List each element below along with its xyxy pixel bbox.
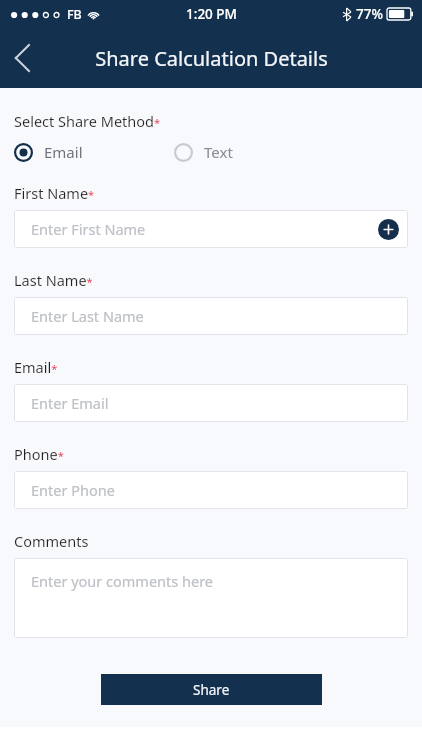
- button[interactable]: Enter Email: [14, 384, 408, 422]
- staticText: Enter First Name: [31, 219, 146, 239]
- staticText: FB: [67, 6, 82, 23]
- staticText: Enter Email: [31, 393, 109, 413]
- staticText: Comments: [14, 531, 89, 551]
- staticText: Share Calculation Details: [95, 45, 328, 72]
- button[interactable]: Back: [0, 36, 44, 80]
- button[interactable]: Text: [174, 142, 233, 162]
- staticText: Select Share Method*: [14, 111, 160, 131]
- button[interactable]: Enter Phone: [14, 471, 408, 509]
- staticText: Email*: [14, 357, 58, 377]
- staticText: Email: [44, 142, 83, 162]
- button[interactable]: Enter Last Name: [14, 297, 408, 335]
- staticText: Phone*: [14, 444, 64, 464]
- staticText: Enter your comments here: [31, 571, 214, 591]
- button[interactable]: Add recipient: [378, 219, 399, 240]
- staticText: Enter Phone: [31, 480, 115, 500]
- staticText: 77%: [356, 5, 383, 23]
- button[interactable]: Enter First Name: [14, 210, 408, 248]
- button[interactable]: Email: [14, 142, 174, 162]
- staticText: First Name*: [14, 183, 95, 203]
- staticText: Share: [193, 681, 230, 699]
- button[interactable]: Share: [101, 674, 322, 705]
- staticText: Last Name*: [14, 270, 93, 290]
- staticText: 1:20 PM: [186, 5, 237, 23]
- button[interactable]: Enter your comments here: [14, 558, 408, 638]
- staticText: Enter Last Name: [31, 306, 144, 326]
- staticText: Text: [204, 142, 233, 162]
